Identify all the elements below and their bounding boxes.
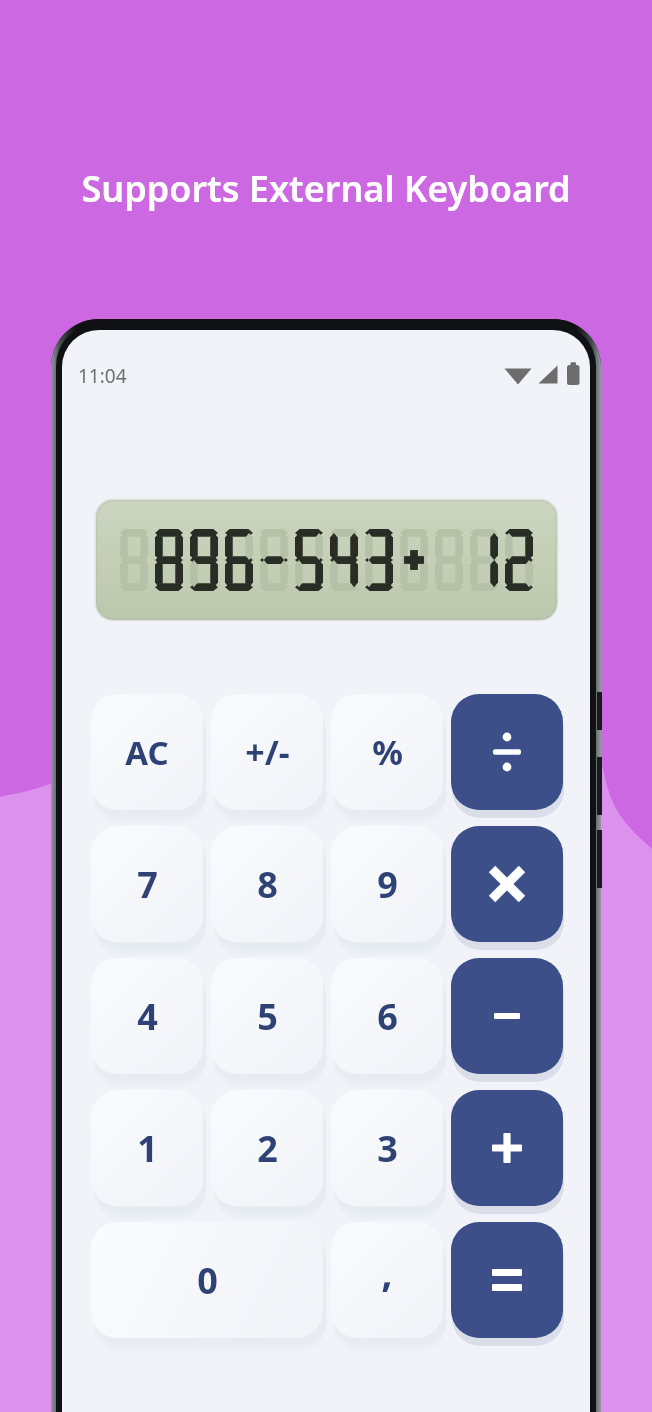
button[interactable]: 0 <box>91 1222 323 1338</box>
staticText: 7 <box>137 860 158 909</box>
staticText: 2 <box>257 1124 278 1173</box>
staticText: 8 <box>257 860 278 909</box>
button[interactable]: 8 <box>211 826 323 942</box>
button[interactable]: 5 <box>211 958 323 1074</box>
button[interactable]: 1 <box>91 1090 203 1206</box>
staticText: +/- <box>245 729 290 775</box>
staticText: 9 <box>377 860 398 909</box>
button[interactable]: Add <box>451 1090 563 1206</box>
button[interactable]: Multiply <box>451 826 563 942</box>
staticText: 1 <box>137 1124 158 1173</box>
staticText: 11:04 <box>78 363 127 389</box>
staticText: , <box>381 1244 393 1298</box>
staticText: 5 <box>257 992 278 1041</box>
button[interactable]: % <box>331 694 443 810</box>
button[interactable]: 3 <box>331 1090 443 1206</box>
button[interactable]: Equals <box>451 1222 563 1338</box>
staticText: AC <box>125 730 169 775</box>
staticText: 6 <box>377 992 398 1041</box>
button[interactable]: Divide <box>451 694 563 810</box>
staticText: % <box>372 729 403 775</box>
staticText: 3 <box>377 1124 398 1173</box>
button[interactable]: 6 <box>331 958 443 1074</box>
staticText: 4 <box>137 992 158 1041</box>
staticText: 0 <box>197 1256 218 1305</box>
staticText: Supports External Keyboard <box>81 164 571 213</box>
button[interactable]: AC <box>91 694 203 810</box>
button[interactable]: 4 <box>91 958 203 1074</box>
button[interactable]: 7 <box>91 826 203 942</box>
button[interactable]: , <box>331 1222 443 1338</box>
button[interactable]: Subtract <box>451 958 563 1074</box>
button[interactable]: +/- <box>211 694 323 810</box>
button[interactable]: 2 <box>211 1090 323 1206</box>
button[interactable]: 9 <box>331 826 443 942</box>
